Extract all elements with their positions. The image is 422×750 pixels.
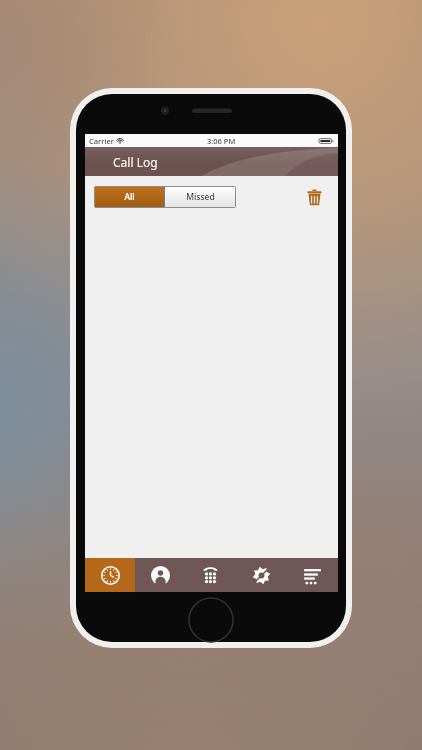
staticText: All	[124, 191, 135, 203]
button[interactable]: Missed	[165, 187, 235, 207]
staticText: Missed	[186, 191, 215, 203]
button[interactable]: Contacts	[135, 558, 185, 592]
staticText: 3:06 PM	[207, 136, 236, 146]
button[interactable]: Call log	[85, 558, 135, 592]
button[interactable]: More	[287, 558, 338, 592]
staticText: Call Log	[113, 154, 158, 170]
button[interactable]: Keypad	[185, 558, 236, 592]
button[interactable]: All	[95, 187, 164, 207]
staticText: Carrier	[89, 136, 114, 146]
button[interactable]: Delete call log	[301, 184, 327, 210]
button[interactable]: Settings	[236, 558, 287, 592]
